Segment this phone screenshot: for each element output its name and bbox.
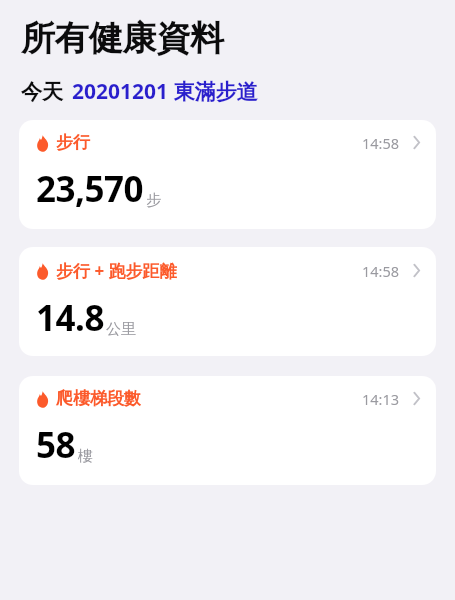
staticText: 23,570	[36, 165, 144, 213]
staticText: 樓	[78, 447, 93, 466]
button[interactable]: 步行	[19, 120, 436, 229]
staticText: 20201201 東滿步道	[72, 77, 258, 106]
staticText: 14.8	[36, 294, 104, 342]
staticText: 58	[36, 421, 76, 469]
other: Show details	[411, 390, 422, 407]
other: Show details	[411, 134, 422, 151]
staticText: 爬樓梯段數	[56, 388, 141, 409]
staticText: 今天	[21, 79, 63, 105]
staticText: 公里	[106, 320, 136, 339]
button[interactable]: 步行 + 跑步距離	[19, 247, 436, 356]
staticText: 14:58	[362, 261, 400, 281]
staticText: 所有健康資料	[21, 17, 224, 60]
staticText: 步行 + 跑步距離	[56, 259, 177, 282]
other: Show details	[411, 262, 422, 279]
button[interactable]: 爬樓梯段數	[19, 376, 436, 485]
staticText: 14:58	[362, 133, 400, 153]
staticText: 14:13	[362, 389, 400, 409]
staticText: 步	[146, 191, 161, 210]
staticText: 步行	[56, 132, 90, 153]
